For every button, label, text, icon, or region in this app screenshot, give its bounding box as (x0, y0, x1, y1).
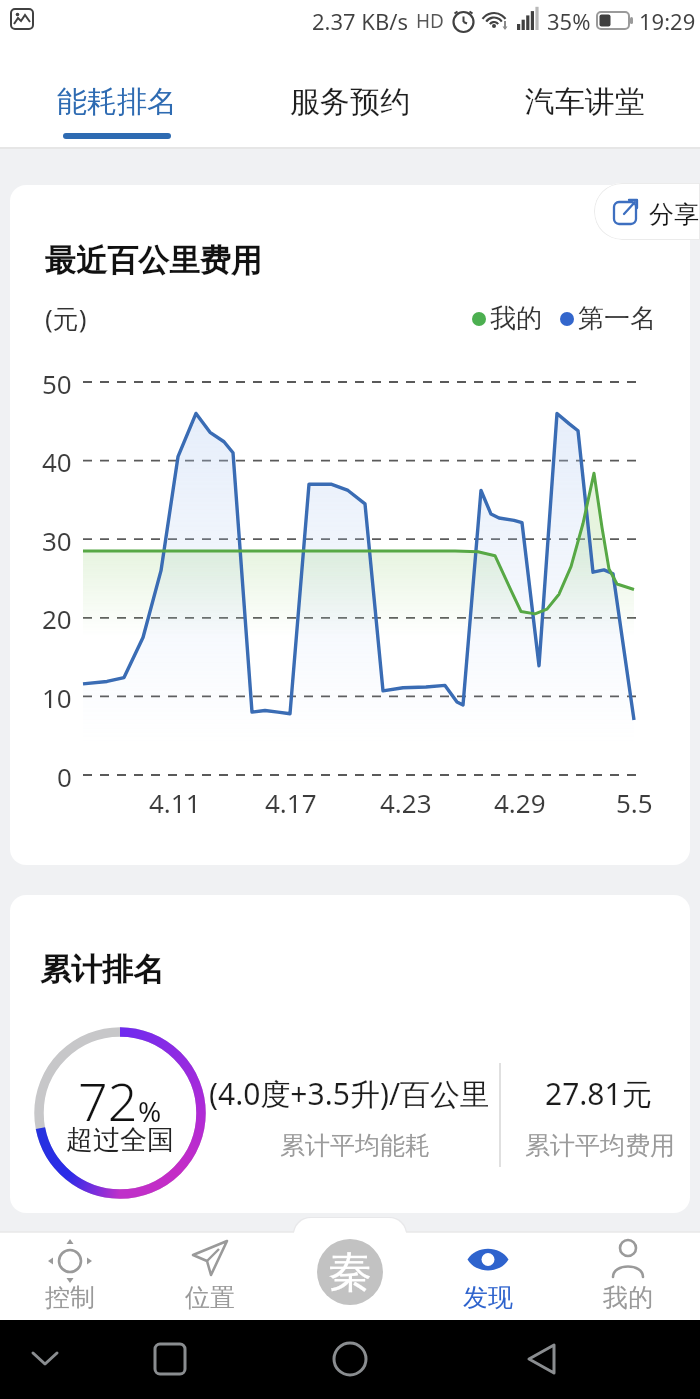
button[interactable]: 发现 (433, 1236, 543, 1320)
staticText: 40 (42, 444, 72, 479)
staticText: 4.29 (494, 785, 546, 820)
button[interactable] (505, 60, 665, 130)
staticText: 位置 (185, 1282, 235, 1313)
staticText: 累计平均能耗 (280, 1130, 430, 1161)
button[interactable] (320, 1330, 380, 1390)
button[interactable]: 秦 (317, 1239, 383, 1305)
staticText: 汽车讲堂 (525, 83, 645, 121)
staticText: 5.5 (616, 785, 653, 820)
staticText: 4.17 (265, 785, 317, 820)
staticText: 27.81元 (545, 1073, 652, 1114)
button[interactable] (270, 60, 430, 130)
button[interactable] (40, 60, 200, 130)
button[interactable] (15, 1330, 75, 1390)
staticText: 35% (547, 6, 591, 36)
staticText: 0 (57, 759, 72, 794)
button[interactable] (510, 1330, 570, 1390)
staticText: 分享 (649, 199, 699, 230)
button[interactable]: 我的 (573, 1236, 683, 1320)
staticText: 19:29 (639, 6, 696, 36)
staticText: 能耗排名 (57, 83, 177, 121)
button[interactable] (140, 1330, 200, 1390)
staticText: (元) (45, 300, 87, 336)
button[interactable]: 位置 (155, 1236, 265, 1320)
button[interactable]: 分享 (594, 183, 700, 240)
staticText: (4.0度+3.5升)/百公里 (209, 1073, 491, 1114)
staticText: 累计排名 (40, 950, 164, 989)
staticText: 我的 (490, 302, 542, 335)
staticText: 我的 (603, 1282, 653, 1313)
staticText: 超过全国 (66, 1123, 174, 1157)
staticText: 30 (42, 523, 72, 558)
staticText: 控制 (45, 1282, 95, 1313)
staticText: 50 (42, 366, 72, 401)
staticText: 最近百公里费用 (45, 241, 262, 280)
staticText: 4.23 (380, 785, 432, 820)
staticText: % (138, 1092, 162, 1130)
staticText: 服务预约 (290, 83, 410, 121)
staticText: 2.37 KB/s (312, 6, 409, 36)
staticText: 发现 (463, 1282, 513, 1313)
staticText: 20 (42, 601, 72, 636)
staticText: 秦 (328, 1245, 372, 1300)
staticText: 10 (42, 680, 72, 715)
staticText: 累计平均费用 (525, 1130, 675, 1161)
staticText: 72 (78, 1065, 138, 1136)
staticText: 第一名 (578, 302, 656, 335)
staticText: 4.11 (149, 785, 201, 820)
button[interactable]: 控制 (15, 1236, 125, 1320)
staticText: HD (416, 8, 444, 34)
